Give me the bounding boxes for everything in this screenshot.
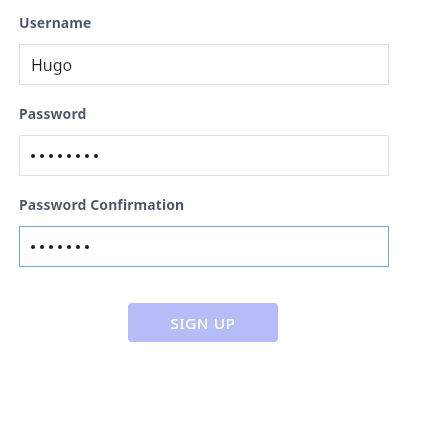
staticText: Hugo <box>31 54 73 76</box>
staticText: Username <box>19 13 92 32</box>
staticText: Password Confirmation <box>19 195 185 214</box>
staticText: SIGN UP <box>170 313 236 333</box>
staticText: Password <box>19 104 87 123</box>
button[interactable] <box>19 135 389 176</box>
button[interactable] <box>19 226 389 267</box>
button[interactable]: SIGN UP <box>128 303 278 342</box>
button[interactable]: Hugo <box>19 44 389 85</box>
